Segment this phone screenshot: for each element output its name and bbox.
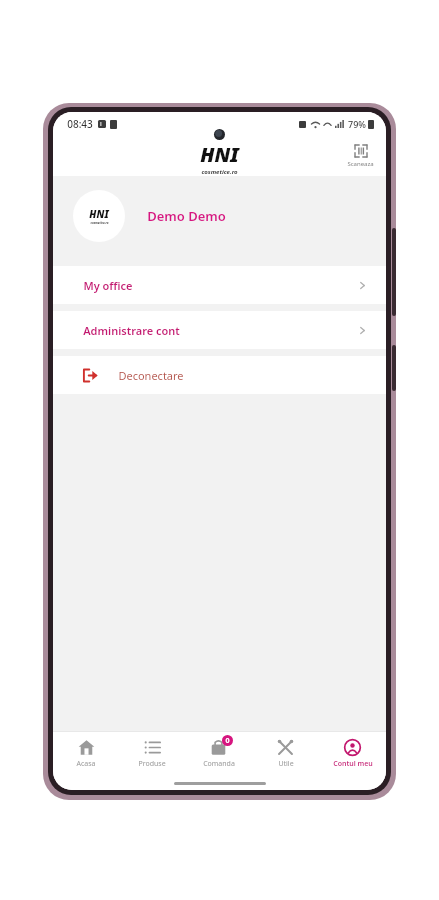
staticText: Comanda	[203, 759, 235, 769]
button[interactable]: Produse	[119, 732, 185, 776]
staticText: Administrare cont	[83, 323, 180, 338]
button[interactable]: Acasa	[53, 732, 119, 776]
staticText: HNI	[200, 141, 239, 168]
staticText: HNI	[89, 207, 109, 221]
staticText: My office	[83, 278, 133, 293]
staticText: 08:43	[67, 117, 93, 131]
staticText: Utile	[278, 759, 294, 769]
staticText: Contul meu	[333, 759, 373, 769]
staticText: Produse	[138, 759, 166, 769]
staticText: Deconectare	[118, 368, 184, 383]
button[interactable]: Contul meu	[319, 732, 386, 776]
button[interactable]: HNI	[53, 176, 386, 256]
staticText: 0	[225, 736, 230, 746]
button[interactable]: 0	[185, 732, 252, 776]
staticText: Demo Demo	[147, 207, 226, 225]
button[interactable]: Administrare cont	[53, 311, 386, 349]
staticText: cosmetice.ro	[90, 221, 109, 225]
staticText: 79%	[348, 118, 366, 130]
staticText: Scaneaza	[347, 160, 374, 168]
button[interactable]: Deconectare	[53, 356, 386, 394]
staticText: Acasa	[76, 759, 96, 769]
staticText: cosmetice.ro	[201, 168, 238, 176]
button[interactable]: Utile	[252, 732, 319, 776]
button[interactable]: My office	[53, 266, 386, 304]
button[interactable]: Scaneaza	[343, 142, 378, 170]
